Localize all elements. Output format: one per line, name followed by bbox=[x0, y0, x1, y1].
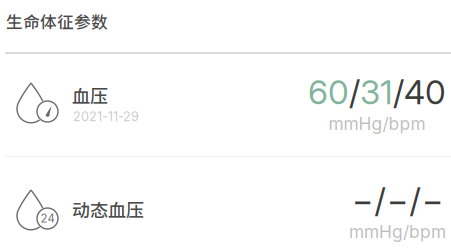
staticText: 60 bbox=[308, 72, 349, 112]
staticText: mmHg/bpm bbox=[328, 113, 425, 134]
staticText: 2021-11-29 bbox=[73, 109, 139, 124]
staticText: − bbox=[352, 180, 373, 220]
staticText: − bbox=[422, 180, 443, 220]
button[interactable]: 24 bbox=[0, 157, 451, 252]
staticText: 31 bbox=[360, 72, 393, 112]
staticText: 24 bbox=[40, 212, 54, 225]
staticText: − bbox=[387, 180, 408, 220]
staticText: 生命体征参数 bbox=[6, 9, 108, 33]
staticText: 40 bbox=[404, 72, 446, 112]
staticText: 动态血压 bbox=[72, 196, 144, 222]
staticText: / bbox=[409, 180, 420, 220]
staticText: 血压 bbox=[72, 82, 108, 108]
staticText: / bbox=[374, 180, 385, 220]
staticText: mmHg/bpm bbox=[349, 221, 446, 242]
button[interactable]: 血压 bbox=[0, 54, 451, 155]
staticText: / bbox=[393, 72, 404, 112]
staticText: / bbox=[349, 72, 360, 112]
